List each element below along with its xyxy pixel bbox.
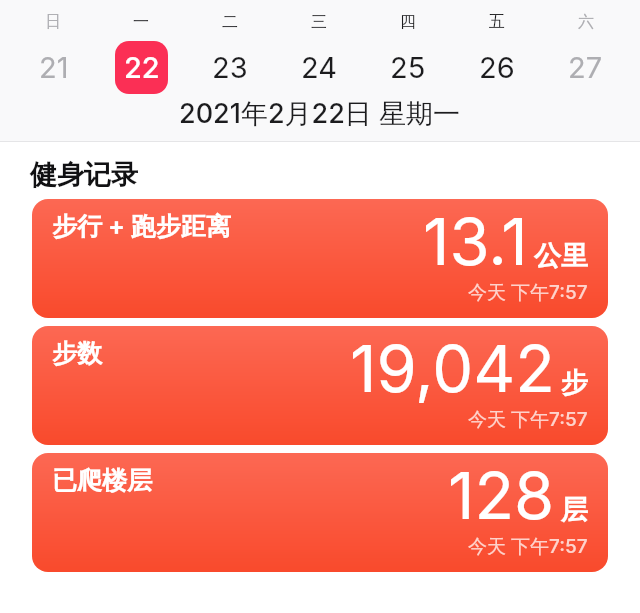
- staticText: 2021年2月22日 星期一: [179, 97, 461, 131]
- button[interactable]: 23: [203, 41, 256, 94]
- button[interactable]: 27: [559, 41, 612, 94]
- button[interactable]: 已爬楼层: [32, 453, 608, 572]
- staticText: 27: [568, 50, 603, 85]
- button[interactable]: 25: [381, 41, 434, 94]
- staticText: 日: [45, 12, 61, 32]
- staticText: 健身记录: [30, 158, 138, 192]
- staticText: 一: [133, 12, 149, 32]
- staticText: 二: [222, 12, 238, 32]
- staticText: 21: [39, 50, 69, 85]
- staticText: 五: [489, 12, 505, 32]
- staticText: 24: [301, 50, 337, 85]
- staticText: 步: [561, 366, 588, 400]
- staticText: 三: [311, 12, 327, 32]
- staticText: 步行 + 跑步距离: [52, 211, 231, 243]
- staticText: 层: [561, 493, 588, 527]
- staticText: 今天 下午7:57: [468, 408, 588, 432]
- staticText: 22: [124, 50, 160, 85]
- staticText: 四: [400, 12, 416, 32]
- staticText: 六: [578, 12, 594, 32]
- button[interactable]: 26: [470, 41, 523, 94]
- staticText: 公里: [534, 239, 588, 273]
- button[interactable]: 22: [115, 41, 168, 94]
- staticText: 128: [448, 456, 555, 535]
- staticText: 已爬楼层: [52, 465, 152, 496]
- staticText: 今天 下午7:57: [468, 535, 588, 559]
- staticText: 23: [212, 50, 248, 85]
- staticText: 25: [390, 50, 426, 85]
- staticText: 19,042: [350, 329, 555, 408]
- button[interactable]: 步数: [32, 326, 608, 445]
- button[interactable]: 步行 + 跑步距离: [32, 199, 608, 318]
- button[interactable]: 24: [292, 41, 345, 94]
- button[interactable]: 21: [27, 41, 80, 94]
- staticText: 13.1: [423, 202, 528, 281]
- staticText: 今天 下午7:57: [468, 281, 588, 305]
- staticText: 步数: [52, 338, 102, 369]
- staticText: 26: [479, 50, 515, 85]
